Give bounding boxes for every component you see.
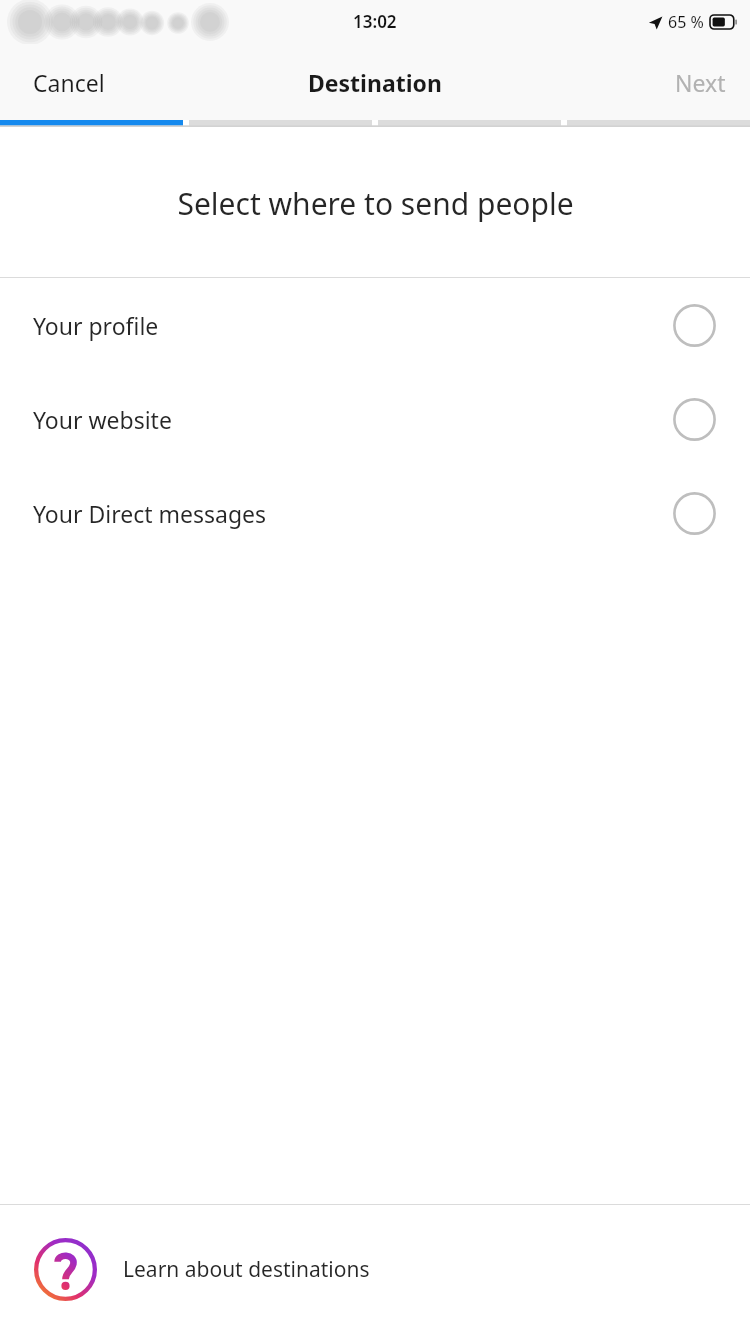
staticText: Learn about destinations [123, 1255, 370, 1284]
staticText: Next [675, 67, 726, 98]
other: Select Your profile [668, 299, 720, 351]
button[interactable]: Your website [0, 372, 750, 466]
staticText: 13:02 [353, 10, 397, 33]
staticText: Cancel [33, 67, 105, 98]
button[interactable]: Next [651, 51, 750, 114]
staticText: Your profile [33, 310, 159, 341]
staticText: Your website [33, 404, 172, 435]
button[interactable]: Learn about destinations [0, 1205, 750, 1334]
staticText: Select where to send people [177, 183, 574, 224]
staticText: 65 % [668, 11, 704, 33]
other: Select Your website [668, 393, 720, 445]
button[interactable]: Your Direct messages [0, 466, 750, 560]
button[interactable]: Your profile [0, 278, 750, 372]
staticText: Your Direct messages [33, 498, 267, 529]
button[interactable]: Cancel [0, 51, 138, 114]
other: Select Your Direct messages [668, 487, 720, 539]
staticText: Destination [308, 67, 442, 98]
